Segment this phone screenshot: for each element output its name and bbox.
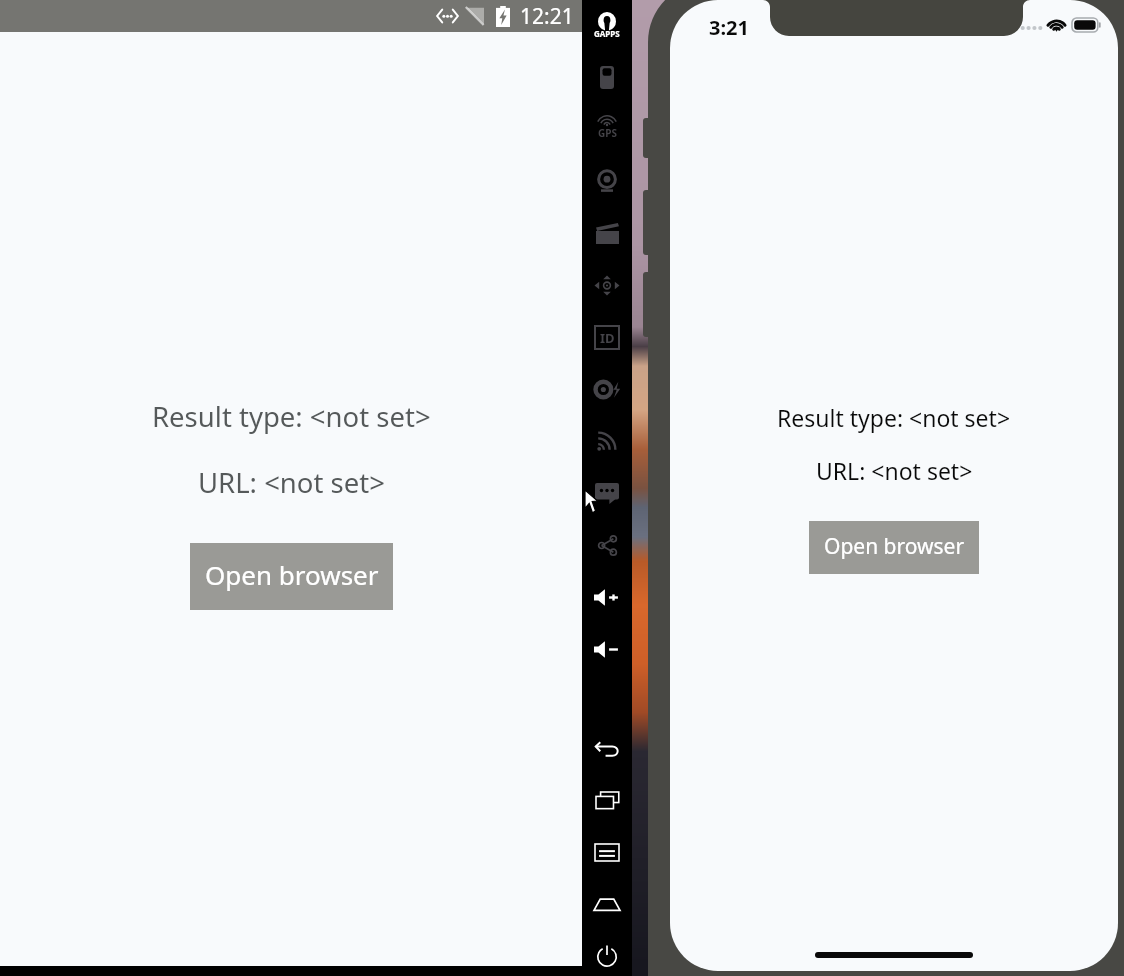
staticText: GPS <box>598 126 617 140</box>
button[interactable]: Record screen <box>582 208 632 258</box>
staticText: Result type: <not set> <box>152 398 431 435</box>
staticText: 12:21 <box>520 2 574 31</box>
button[interactable]: Back <box>582 724 632 774</box>
staticText: Open browser <box>824 532 965 561</box>
button[interactable]: Share <box>582 520 632 570</box>
button[interactable]: Directional pad <box>582 260 632 310</box>
button[interactable]: Volume down <box>582 624 632 674</box>
button[interactable]: Phone identity <box>582 312 632 362</box>
button[interactable]: Messages <box>582 468 632 518</box>
staticText: Open browser <box>205 557 379 592</box>
staticText: ID <box>600 329 615 347</box>
button[interactable]: Menu <box>582 827 632 877</box>
staticText: 3:21 <box>709 14 749 41</box>
button[interactable]: Overview <box>582 775 632 825</box>
staticText: URL: <not set> <box>816 455 973 486</box>
button[interactable]: Camera <box>582 156 632 206</box>
staticText: URL: <not set> <box>198 464 385 501</box>
button[interactable]: Battery charge <box>582 364 632 414</box>
button[interactable]: Battery <box>582 52 632 102</box>
button[interactable]: Cellular <box>582 416 632 466</box>
button[interactable]: Volume up <box>582 572 632 622</box>
button[interactable]: Home <box>582 879 632 929</box>
button[interactable]: Extended controls <box>582 0 632 50</box>
button[interactable]: GPS <box>582 102 632 152</box>
button[interactable]: Open browser <box>190 543 393 610</box>
staticText: GAPPS <box>594 28 620 39</box>
staticText: Result type: <not set> <box>777 402 1011 433</box>
button[interactable]: Power <box>582 931 632 976</box>
button[interactable]: Open browser <box>809 521 979 574</box>
